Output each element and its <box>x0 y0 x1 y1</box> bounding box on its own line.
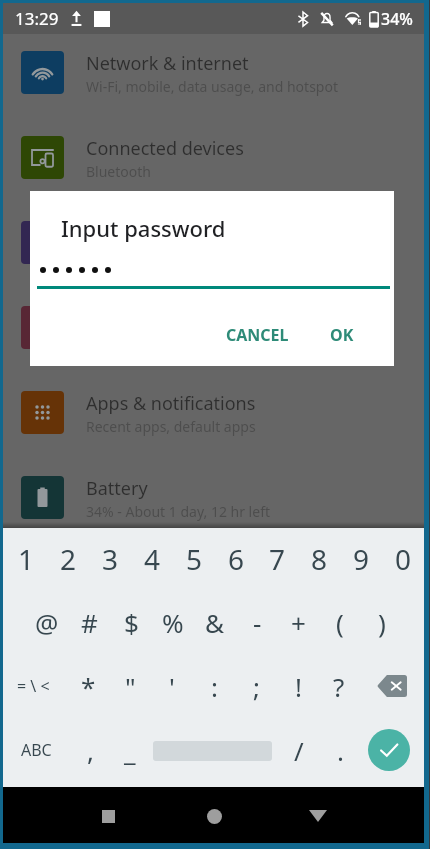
staticText: Recent apps, default apps <box>86 417 256 436</box>
staticText: 9 <box>353 540 370 578</box>
button[interactable]: Back <box>294 792 342 840</box>
button[interactable]: : <box>193 666 235 706</box>
staticText: ? <box>333 669 345 704</box>
button[interactable]: % <box>152 602 194 642</box>
button[interactable]: ( <box>319 602 361 642</box>
staticText: ; <box>253 669 260 704</box>
staticText: Wallpaper, sleep, font size <box>86 332 256 351</box>
staticText: 7 <box>269 540 286 578</box>
button[interactable]: Enter <box>368 729 410 771</box>
button[interactable]: OK <box>320 316 364 354</box>
button[interactable]: = \ < <box>12 666 54 706</box>
button[interactable]: Recents <box>84 792 132 840</box>
staticText: & <box>205 605 225 640</box>
button[interactable]: 5 <box>173 539 215 579</box>
staticText: : <box>211 669 218 704</box>
button[interactable]: _ <box>109 730 151 770</box>
button[interactable]: Backspace <box>368 666 416 706</box>
staticText: . <box>337 733 344 768</box>
staticText: % <box>162 605 184 640</box>
staticText: - <box>253 605 262 640</box>
staticText: 6 <box>228 540 245 578</box>
staticText: Battery <box>86 476 148 501</box>
staticText: 4 <box>144 540 161 578</box>
button[interactable]: CANCEL <box>216 316 299 354</box>
staticText: 8 <box>311 540 328 578</box>
staticText: * <box>81 669 96 704</box>
staticText: Bluetooth <box>86 162 151 181</box>
button[interactable]: . <box>319 730 361 770</box>
button[interactable]: & <box>194 602 236 642</box>
button[interactable]: ABC <box>15 730 57 770</box>
staticText: # <box>81 605 98 640</box>
button[interactable]: / <box>278 730 320 770</box>
staticText: + <box>291 605 306 640</box>
staticText: 34% - About 1 day, 12 hr left <box>86 502 271 521</box>
button[interactable]: 2 <box>47 539 89 579</box>
staticText: Network & internet <box>86 51 249 76</box>
button[interactable]: Apps & notifications <box>3 388 424 473</box>
button[interactable]: 3 <box>89 539 131 579</box>
button[interactable]: ? <box>318 666 360 706</box>
staticText: @ <box>35 605 59 640</box>
staticText: 13:29 <box>15 7 59 30</box>
button[interactable]: - <box>236 602 278 642</box>
button[interactable]: 7 <box>256 539 298 579</box>
staticText: Apps & notifications <box>86 221 256 246</box>
button[interactable]: $ <box>110 602 152 642</box>
staticText: ABC <box>21 739 52 761</box>
staticText: , <box>87 733 94 768</box>
button[interactable]: + <box>277 602 319 642</box>
button[interactable]: " <box>109 666 151 706</box>
staticText: ' <box>169 669 175 704</box>
staticText: ) <box>378 605 386 640</box>
button[interactable]: ! <box>277 666 319 706</box>
staticText: OK <box>330 324 354 346</box>
button[interactable]: 6 <box>215 539 257 579</box>
staticText: ( <box>336 605 344 640</box>
staticText: / <box>294 733 304 768</box>
button[interactable]: , <box>69 730 111 770</box>
button[interactable]: Home <box>190 792 238 840</box>
staticText: Connected devices <box>86 136 244 161</box>
button[interactable]: ' <box>151 666 193 706</box>
staticText: Apps & notifications <box>86 391 256 416</box>
button[interactable]: 1 <box>5 539 47 579</box>
staticText: Input password <box>61 213 226 243</box>
button[interactable]: ) <box>361 602 403 642</box>
staticText: 2 <box>60 540 77 578</box>
button[interactable]: # <box>68 602 110 642</box>
button[interactable]: Network & internet <box>3 48 424 133</box>
staticText: ! <box>295 669 302 704</box>
staticText: Wi-Fi, mobile, data usage, and hotspot <box>86 77 338 96</box>
button[interactable]: Connected devices <box>3 133 424 218</box>
staticText: _ <box>124 733 136 768</box>
button[interactable]: Display <box>3 303 424 388</box>
button[interactable]: * <box>67 666 109 706</box>
button[interactable]: 9 <box>340 539 382 579</box>
staticText: CANCEL <box>226 324 289 346</box>
button[interactable]: @ <box>26 602 68 642</box>
staticText: 0 <box>395 540 412 578</box>
staticText: = \ < <box>17 675 50 697</box>
button[interactable]: Battery <box>3 473 424 558</box>
staticText: 3 <box>102 540 119 578</box>
button[interactable]: 0 <box>382 539 424 579</box>
staticText: $ <box>124 605 139 640</box>
button[interactable]: Apps & notifications <box>3 218 424 303</box>
staticText: 1 <box>18 540 35 578</box>
button[interactable]: ; <box>235 666 277 706</box>
staticText: " <box>125 669 136 704</box>
button[interactable]: 8 <box>298 539 340 579</box>
button[interactable]: 4 <box>131 539 173 579</box>
staticText: 34% <box>381 8 413 30</box>
staticText: 5 <box>186 540 203 578</box>
